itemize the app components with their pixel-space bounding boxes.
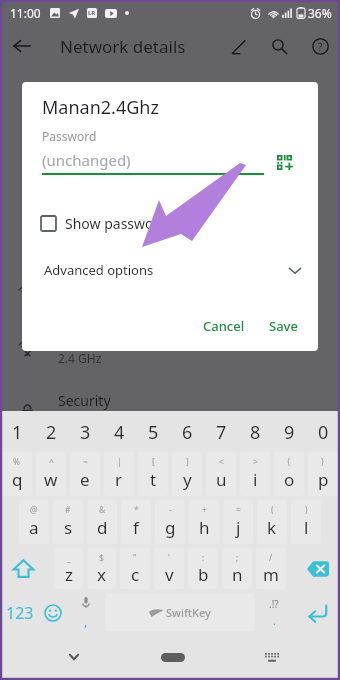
staticText: j: [236, 516, 241, 539]
button[interactable]: %: [2, 452, 32, 496]
button[interactable]: 4: [102, 411, 136, 450]
staticText: w: [44, 468, 58, 491]
button[interactable]: Shift: [0, 546, 52, 591]
button[interactable]: Scan QR code: [272, 150, 296, 174]
button[interactable]: 123: [0, 591, 40, 634]
button[interactable]: Home: [149, 634, 197, 680]
button[interactable]: 2: [34, 411, 68, 450]
button[interactable]: -: [155, 500, 185, 544]
button[interactable]: @: [19, 500, 49, 544]
staticText: d: [97, 516, 108, 539]
staticText: 2.4 GHz: [58, 350, 102, 366]
button[interactable]: 1: [0, 411, 34, 450]
button[interactable]: 6: [170, 411, 204, 450]
button[interactable]: 5: [136, 411, 170, 450]
button[interactable]: ": [120, 548, 150, 589]
button[interactable]: &: [87, 500, 117, 544]
button[interactable]: Signal strength: [0, 270, 340, 314]
staticText: }: [321, 456, 325, 468]
button[interactable]: *: [121, 500, 151, 544]
button[interactable]: Backspace: [288, 546, 340, 591]
staticText: u: [216, 468, 227, 491]
staticText: LR: [88, 9, 96, 17]
staticText: 5: [148, 420, 159, 445]
staticText: (unchanged): [42, 150, 131, 170]
staticText: z: [65, 563, 73, 586]
button[interactable]: /: [256, 548, 286, 589]
button[interactable]: }: [308, 452, 338, 496]
button[interactable]: ^: [36, 452, 66, 496]
button[interactable]: Save: [261, 312, 306, 340]
button[interactable]: Search: [260, 26, 298, 66]
staticText: &: [99, 504, 106, 516]
staticText: v: [165, 563, 174, 586]
staticText: {: [287, 456, 291, 468]
staticText: Password: [42, 128, 97, 144]
staticText: .: [273, 613, 276, 628]
button[interactable]: Hide keyboard: [50, 634, 98, 680]
button[interactable]: _: [54, 548, 83, 589]
staticText: Cancel: [203, 317, 245, 335]
button[interactable]: #: [53, 500, 83, 544]
staticText: i: [253, 468, 258, 491]
button[interactable]: [: [138, 452, 168, 496]
button[interactable]: <: [206, 452, 236, 496]
button[interactable]: ': [154, 548, 184, 589]
button[interactable]: SwiftKey: [105, 594, 255, 631]
staticText: 11:00: [10, 5, 41, 21]
button[interactable]: >: [240, 452, 270, 496]
staticText: 2: [46, 420, 57, 445]
staticText: 1: [12, 420, 23, 445]
button[interactable]: Edit: [220, 26, 258, 66]
button[interactable]: Security: [0, 388, 340, 432]
button[interactable]: :: [188, 548, 218, 589]
staticText: r: [115, 468, 123, 491]
button[interactable]: |: [104, 452, 134, 496]
button[interactable]: Advanced options: [22, 255, 318, 285]
button[interactable]: 0: [306, 411, 340, 450]
button[interactable]: ): [291, 500, 321, 544]
staticText: >: [253, 456, 258, 468]
button[interactable]: 3: [68, 411, 102, 450]
button[interactable]: =: [223, 500, 253, 544]
button[interactable]: 8: [238, 411, 272, 450]
button[interactable]: Back: [0, 26, 44, 66]
staticText: e: [80, 468, 90, 491]
button[interactable]: Help: [300, 26, 340, 66]
button[interactable]: Cancel: [195, 312, 253, 340]
button[interactable]: Show password: [22, 209, 318, 237]
staticText: 4: [114, 420, 125, 445]
button[interactable]: Emoji: [40, 591, 66, 634]
button[interactable]: $: [87, 548, 116, 589]
staticText: /: [269, 552, 273, 564]
button[interactable]: ]: [172, 452, 202, 496]
staticText: b: [198, 563, 209, 586]
staticText: Security: [58, 391, 111, 410]
button[interactable]: (: [257, 500, 287, 544]
button[interactable]: 9: [272, 411, 306, 450]
staticText: SwiftKey: [166, 605, 211, 620]
staticText: g: [165, 516, 176, 539]
button[interactable]: ~: [70, 452, 100, 496]
staticText: 0: [318, 420, 329, 445]
staticText: f: [133, 516, 139, 539]
button[interactable]: {: [274, 452, 304, 496]
staticText: Advanced options: [44, 261, 154, 279]
button[interactable]: 7: [204, 411, 238, 450]
staticText: p: [318, 468, 329, 491]
staticText: #: [65, 504, 71, 516]
button[interactable]: Enter: [293, 591, 340, 634]
button[interactable]: Switch keyboard: [248, 634, 296, 680]
staticText: k: [267, 516, 277, 539]
staticText: x: [97, 563, 106, 586]
button[interactable]: .!?: [255, 591, 293, 634]
button[interactable]: ,: [66, 591, 105, 634]
button[interactable]: Frequency: [0, 325, 340, 369]
button[interactable]: ;: [222, 548, 252, 589]
staticText: 36%: [308, 5, 332, 21]
staticText: .!?: [269, 597, 279, 611]
button[interactable]: +: [189, 500, 219, 544]
staticText: %: [13, 456, 21, 468]
